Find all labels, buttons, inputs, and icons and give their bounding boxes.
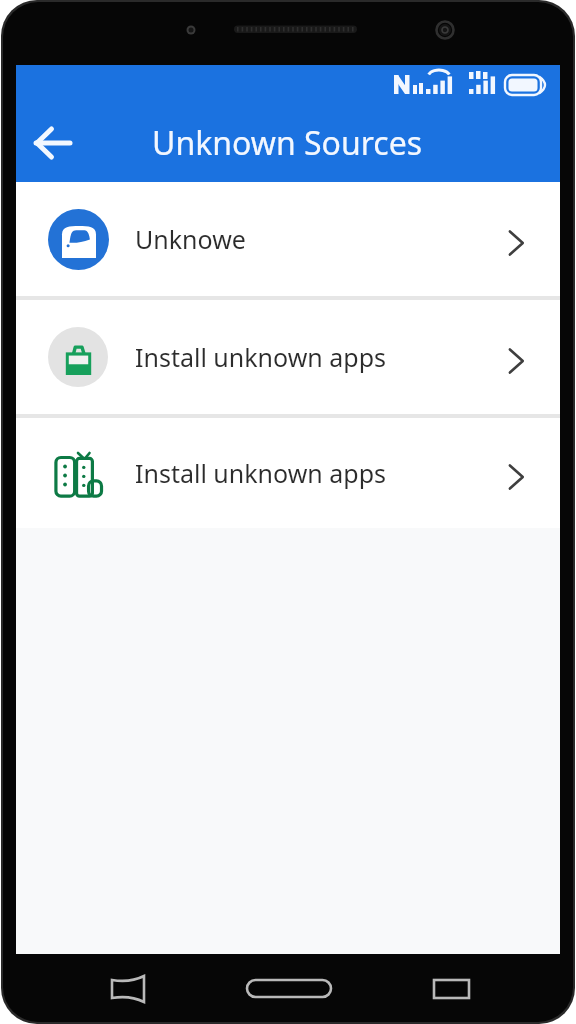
button[interactable]: Back (33, 123, 73, 163)
button[interactable]: Unknowe (16, 182, 560, 296)
button[interactable]: Recent apps (97, 967, 159, 1011)
staticText: Unknowe (135, 222, 573, 256)
staticText: Unknown Sources (152, 121, 423, 165)
staticText: Install unknown apps (135, 456, 573, 490)
button[interactable]: Install unknown apps (16, 418, 560, 528)
button[interactable]: Home (239, 967, 339, 1011)
button[interactable]: Install unknown apps (16, 300, 560, 414)
staticText: Install unknown apps (135, 340, 573, 374)
button[interactable]: Overview (421, 967, 483, 1011)
